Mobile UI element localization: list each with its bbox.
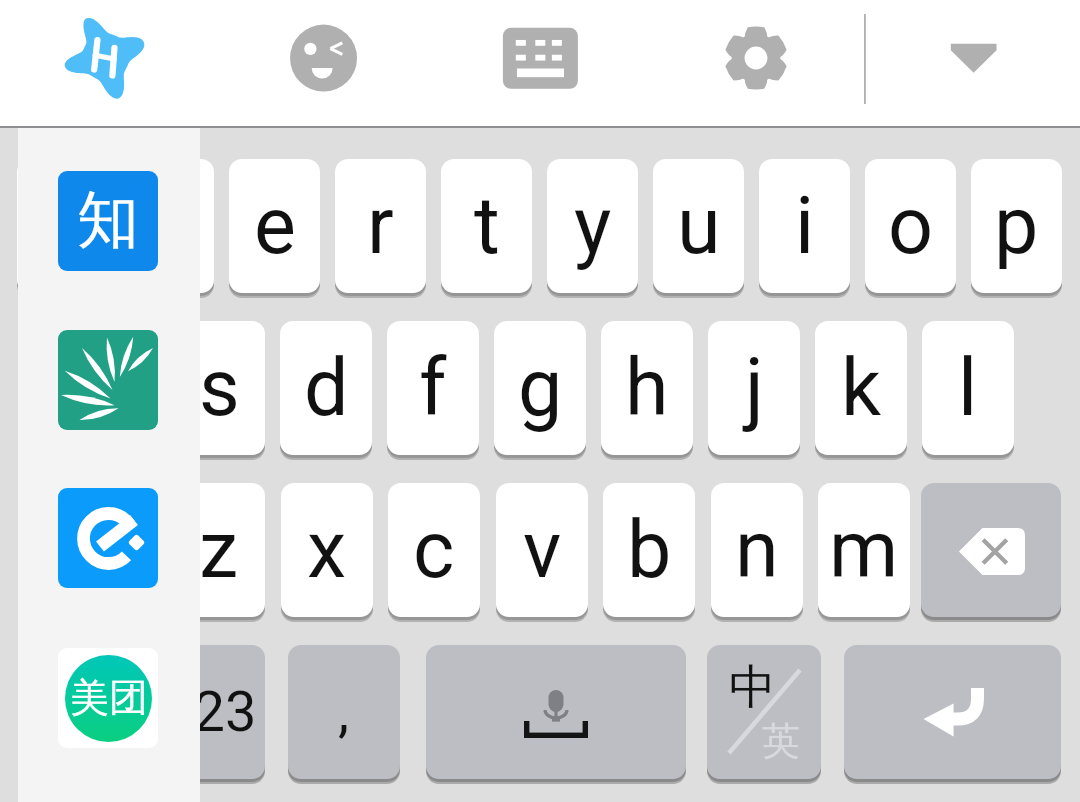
button[interactable]: q: [17, 159, 108, 299]
staticText: n: [735, 504, 779, 597]
button[interactable]: 123: [153, 645, 265, 785]
staticText: c: [413, 504, 455, 597]
button[interactable]: l: [922, 321, 1014, 461]
button[interactable]: v: [496, 483, 588, 623]
staticText: k: [841, 342, 882, 435]
staticText: j: [745, 342, 764, 435]
staticText: h: [625, 342, 669, 435]
staticText: u: [677, 180, 721, 273]
button[interactable]: i: [759, 159, 850, 299]
staticText: g: [518, 342, 563, 435]
staticText: x: [307, 504, 347, 597]
staticText: m: [829, 504, 899, 597]
staticText: b: [627, 504, 672, 597]
staticText: f: [419, 342, 447, 435]
button[interactable]: t: [441, 159, 532, 299]
button[interactable]: Emoji: [278, 12, 370, 104]
button[interactable]: p: [971, 159, 1062, 299]
staticText: 123: [162, 679, 257, 745]
staticText: z: [199, 504, 239, 597]
button[interactable]: Meituan: [58, 648, 158, 748]
staticText: ,: [338, 679, 350, 745]
button[interactable]: Switch Chinese English: [707, 645, 821, 785]
staticText: 美团: [70, 673, 148, 722]
button[interactable]: n: [711, 483, 803, 623]
staticText: 符: [50, 681, 100, 744]
button[interactable]: Keyboard layout: [494, 12, 586, 104]
button[interactable]: w: [123, 159, 214, 299]
button[interactable]: e: [229, 159, 320, 299]
button[interactable]: d: [280, 321, 372, 461]
button[interactable]: b: [603, 483, 695, 623]
button[interactable]: Hide keyboard: [928, 12, 1020, 104]
staticText: s: [199, 342, 240, 435]
button[interactable]: Backspace: [921, 483, 1061, 623]
button[interactable]: Enter: [844, 645, 1061, 785]
button[interactable]: Zhihu: [58, 171, 158, 271]
button[interactable]: Space: [426, 645, 686, 785]
button[interactable]: f: [387, 321, 479, 461]
button[interactable]: r: [335, 159, 426, 299]
button[interactable]: x: [281, 483, 373, 623]
button[interactable]: Shift: [19, 483, 159, 623]
staticText: l: [958, 342, 978, 435]
button[interactable]: j: [708, 321, 800, 461]
button[interactable]: Settings: [710, 12, 802, 104]
staticText: i: [795, 180, 815, 273]
staticText: y: [574, 180, 612, 273]
button[interactable]: a: [66, 321, 158, 461]
button[interactable]: m: [818, 483, 910, 623]
button[interactable]: o: [865, 159, 956, 299]
staticText: w: [139, 180, 199, 273]
staticText: o: [888, 180, 934, 273]
button[interactable]: c: [388, 483, 480, 623]
staticText: 中: [729, 658, 776, 717]
button[interactable]: s: [173, 321, 265, 461]
staticText: q: [40, 180, 85, 273]
button[interactable]: u: [653, 159, 744, 299]
staticText: d: [304, 342, 349, 435]
staticText: t: [474, 180, 500, 273]
button[interactable]: g: [494, 321, 586, 461]
staticText: 知: [77, 181, 139, 259]
staticText: 英: [762, 717, 800, 765]
button[interactable]: Ele.me: [58, 488, 158, 588]
staticText: v: [523, 504, 562, 597]
button[interactable]: Symbols: [19, 645, 131, 785]
button[interactable]: h: [601, 321, 693, 461]
button[interactable]: ,: [288, 645, 400, 785]
staticText: e: [254, 180, 296, 273]
button[interactable]: Keyboard brand: [62, 12, 154, 104]
button[interactable]: k: [815, 321, 907, 461]
button[interactable]: Dictionary: [58, 330, 158, 430]
button[interactable]: y: [547, 159, 638, 299]
button[interactable]: z: [173, 483, 265, 623]
staticText: p: [994, 180, 1039, 273]
staticText: r: [367, 180, 394, 273]
staticText: a: [91, 342, 134, 435]
